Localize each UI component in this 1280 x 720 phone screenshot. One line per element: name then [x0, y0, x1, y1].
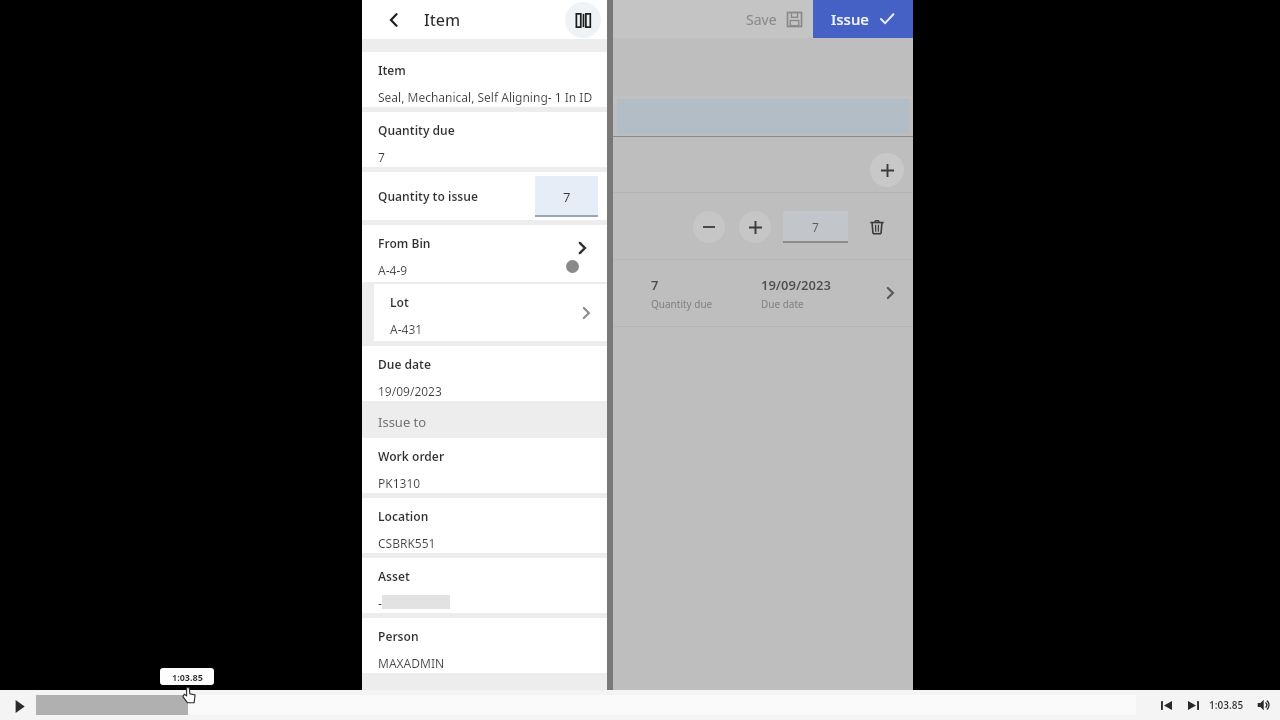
staticText: Due date — [761, 297, 804, 311]
staticText: 7 — [812, 219, 819, 235]
button[interactable]: Step back — [1156, 695, 1176, 715]
button[interactable]: Back — [374, 0, 413, 39]
staticText: Lot — [390, 294, 409, 310]
staticText: Item — [378, 62, 406, 78]
button[interactable]: Item — [362, 52, 607, 107]
staticText: - — [378, 595, 382, 611]
staticText: Item — [424, 9, 461, 31]
staticText: 7 — [563, 188, 571, 206]
staticText: Seal, Mechanical, Self Aligning- 1 In ID — [378, 89, 593, 105]
staticText: A-431 — [390, 321, 423, 337]
staticText: From Bin — [378, 235, 431, 251]
button[interactable]: Decrease quantity — [693, 211, 725, 243]
button[interactable]: Delete — [864, 214, 890, 240]
button[interactable]: Issue — [813, 0, 913, 38]
button[interactable]: Increase quantity — [739, 211, 771, 243]
staticText: CSBRK551 — [378, 535, 436, 551]
staticText: 19/09/2023 — [378, 383, 442, 399]
button[interactable]: Volume — [1254, 695, 1274, 715]
button[interactable]: From Bin — [362, 225, 607, 282]
button[interactable]: Location — [362, 498, 607, 553]
button[interactable]: Due date — [362, 346, 607, 401]
staticText: Asset — [378, 568, 410, 584]
staticText: 1:03.85 — [172, 671, 203, 683]
staticText: 7 — [651, 276, 659, 294]
staticText: Quantity to issue — [378, 188, 478, 204]
button[interactable]: Lot — [374, 284, 607, 341]
button[interactable]: Asset — [362, 558, 607, 613]
button[interactable]: Quantity due — [362, 112, 607, 167]
button[interactable]: Person — [362, 618, 607, 673]
staticText: Location — [378, 508, 429, 524]
staticText: Due date — [378, 356, 432, 372]
staticText: Issue — [831, 9, 869, 29]
staticText: 19/09/2023 — [761, 276, 831, 294]
button[interactable]: Quantity to issue — [362, 172, 607, 220]
button[interactable]: Work order — [362, 438, 607, 493]
staticText: Person — [378, 628, 419, 644]
button[interactable]: 7 — [613, 262, 913, 324]
button[interactable]: Scan barcode — [565, 2, 601, 38]
button[interactable]: Play — [6, 693, 32, 719]
button[interactable]: Save — [736, 10, 813, 29]
staticText: 7 — [378, 149, 385, 165]
staticText: Save — [746, 10, 777, 29]
staticText: Quantity due — [651, 297, 713, 311]
button[interactable]: Step forward — [1183, 695, 1203, 715]
staticText: PK1310 — [378, 475, 421, 491]
button[interactable]: Add — [870, 153, 904, 187]
staticText: Quantity due — [378, 122, 455, 138]
staticText: A-4-9 — [378, 262, 408, 278]
staticText: MAXADMIN — [378, 655, 445, 671]
staticText: 1:03.85 — [1209, 698, 1244, 712]
staticText: Work order — [378, 448, 445, 464]
staticText: Issue to — [378, 413, 427, 431]
